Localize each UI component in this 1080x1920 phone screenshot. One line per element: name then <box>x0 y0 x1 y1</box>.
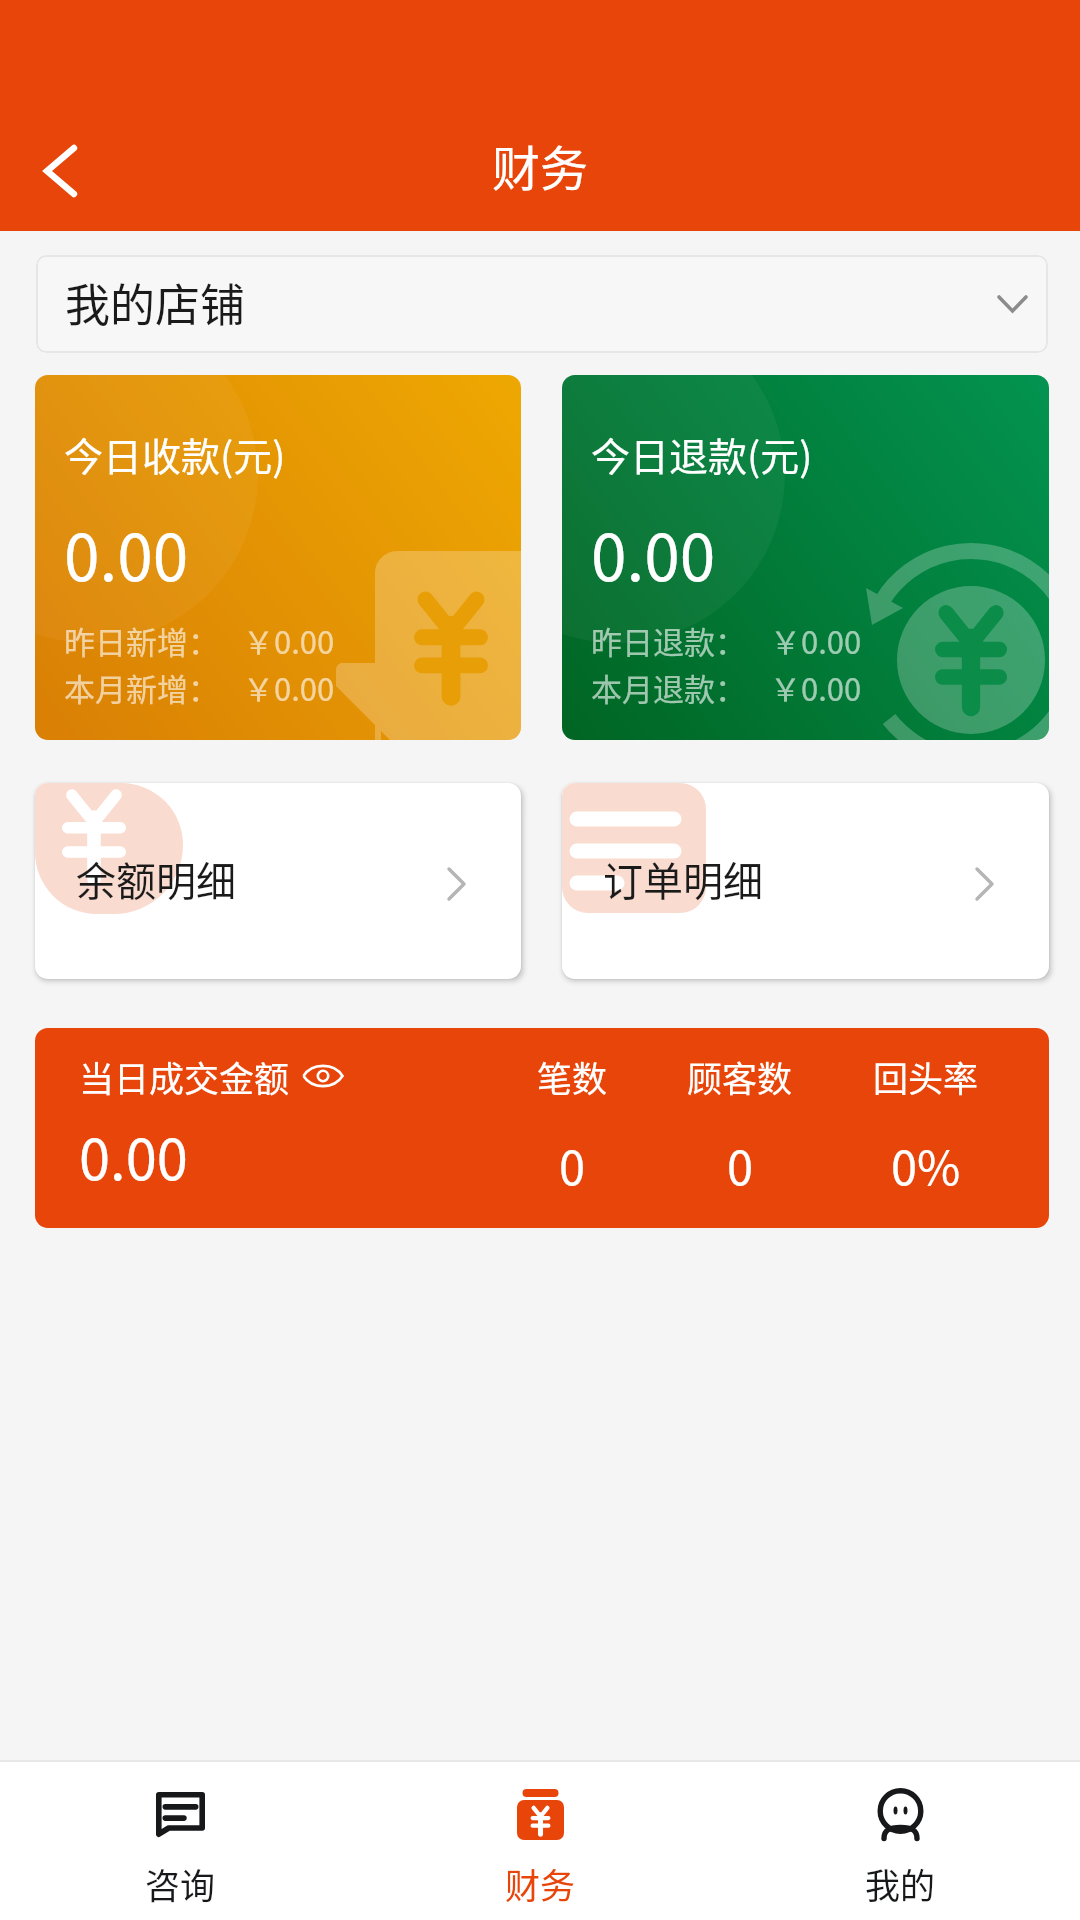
button[interactable]: Back <box>17 126 107 216</box>
staticText: 财务 <box>492 130 589 200</box>
button[interactable]: 今日收款(元) <box>35 375 521 740</box>
staticText: 今日退款(元) <box>591 426 813 482</box>
button[interactable]: 余额明细 <box>35 783 521 979</box>
staticText: 今日收款(元) <box>64 426 286 482</box>
staticText: 本月退款： <box>591 665 746 710</box>
staticText: 回头率 <box>873 1051 979 1102</box>
staticText: 0.00 <box>79 1115 188 1196</box>
staticText: 我的店铺 <box>65 270 246 335</box>
staticText: 昨日新增： <box>64 618 219 663</box>
staticText: ￥0.00 <box>770 618 862 663</box>
staticText: 笔数 <box>537 1051 608 1102</box>
staticText: 昨日退款： <box>591 618 746 663</box>
staticText: ￥0.00 <box>770 665 862 710</box>
staticText: 当日成交金额 <box>79 1051 290 1102</box>
staticText: 0 <box>727 1130 754 1198</box>
staticText: 顾客数 <box>687 1051 793 1102</box>
button[interactable]: 财务 <box>360 1762 720 1920</box>
button[interactable]: 订单明细 <box>562 783 1049 979</box>
button[interactable]: 我的 <box>720 1762 1080 1920</box>
button[interactable]: 今日退款(元) <box>562 375 1049 740</box>
staticText: 订单明细 <box>603 850 763 908</box>
staticText: 财务 <box>505 1858 576 1909</box>
staticText: ￥0.00 <box>243 618 335 663</box>
button[interactable]: 我的店铺 <box>36 255 1048 353</box>
staticText: 本月新增： <box>64 665 219 710</box>
staticText: 0.00 <box>64 507 189 600</box>
button[interactable]: 咨询 <box>0 1762 360 1920</box>
staticText: 0 <box>559 1130 586 1198</box>
staticText: 余额明细 <box>76 850 236 908</box>
staticText: 0.00 <box>591 507 716 600</box>
staticText: 0% <box>891 1130 961 1198</box>
staticText: ￥0.00 <box>243 665 335 710</box>
staticText: 咨询 <box>145 1858 216 1909</box>
button[interactable]: 当日成交金额 <box>35 1028 1049 1228</box>
staticText: 我的 <box>865 1858 936 1909</box>
